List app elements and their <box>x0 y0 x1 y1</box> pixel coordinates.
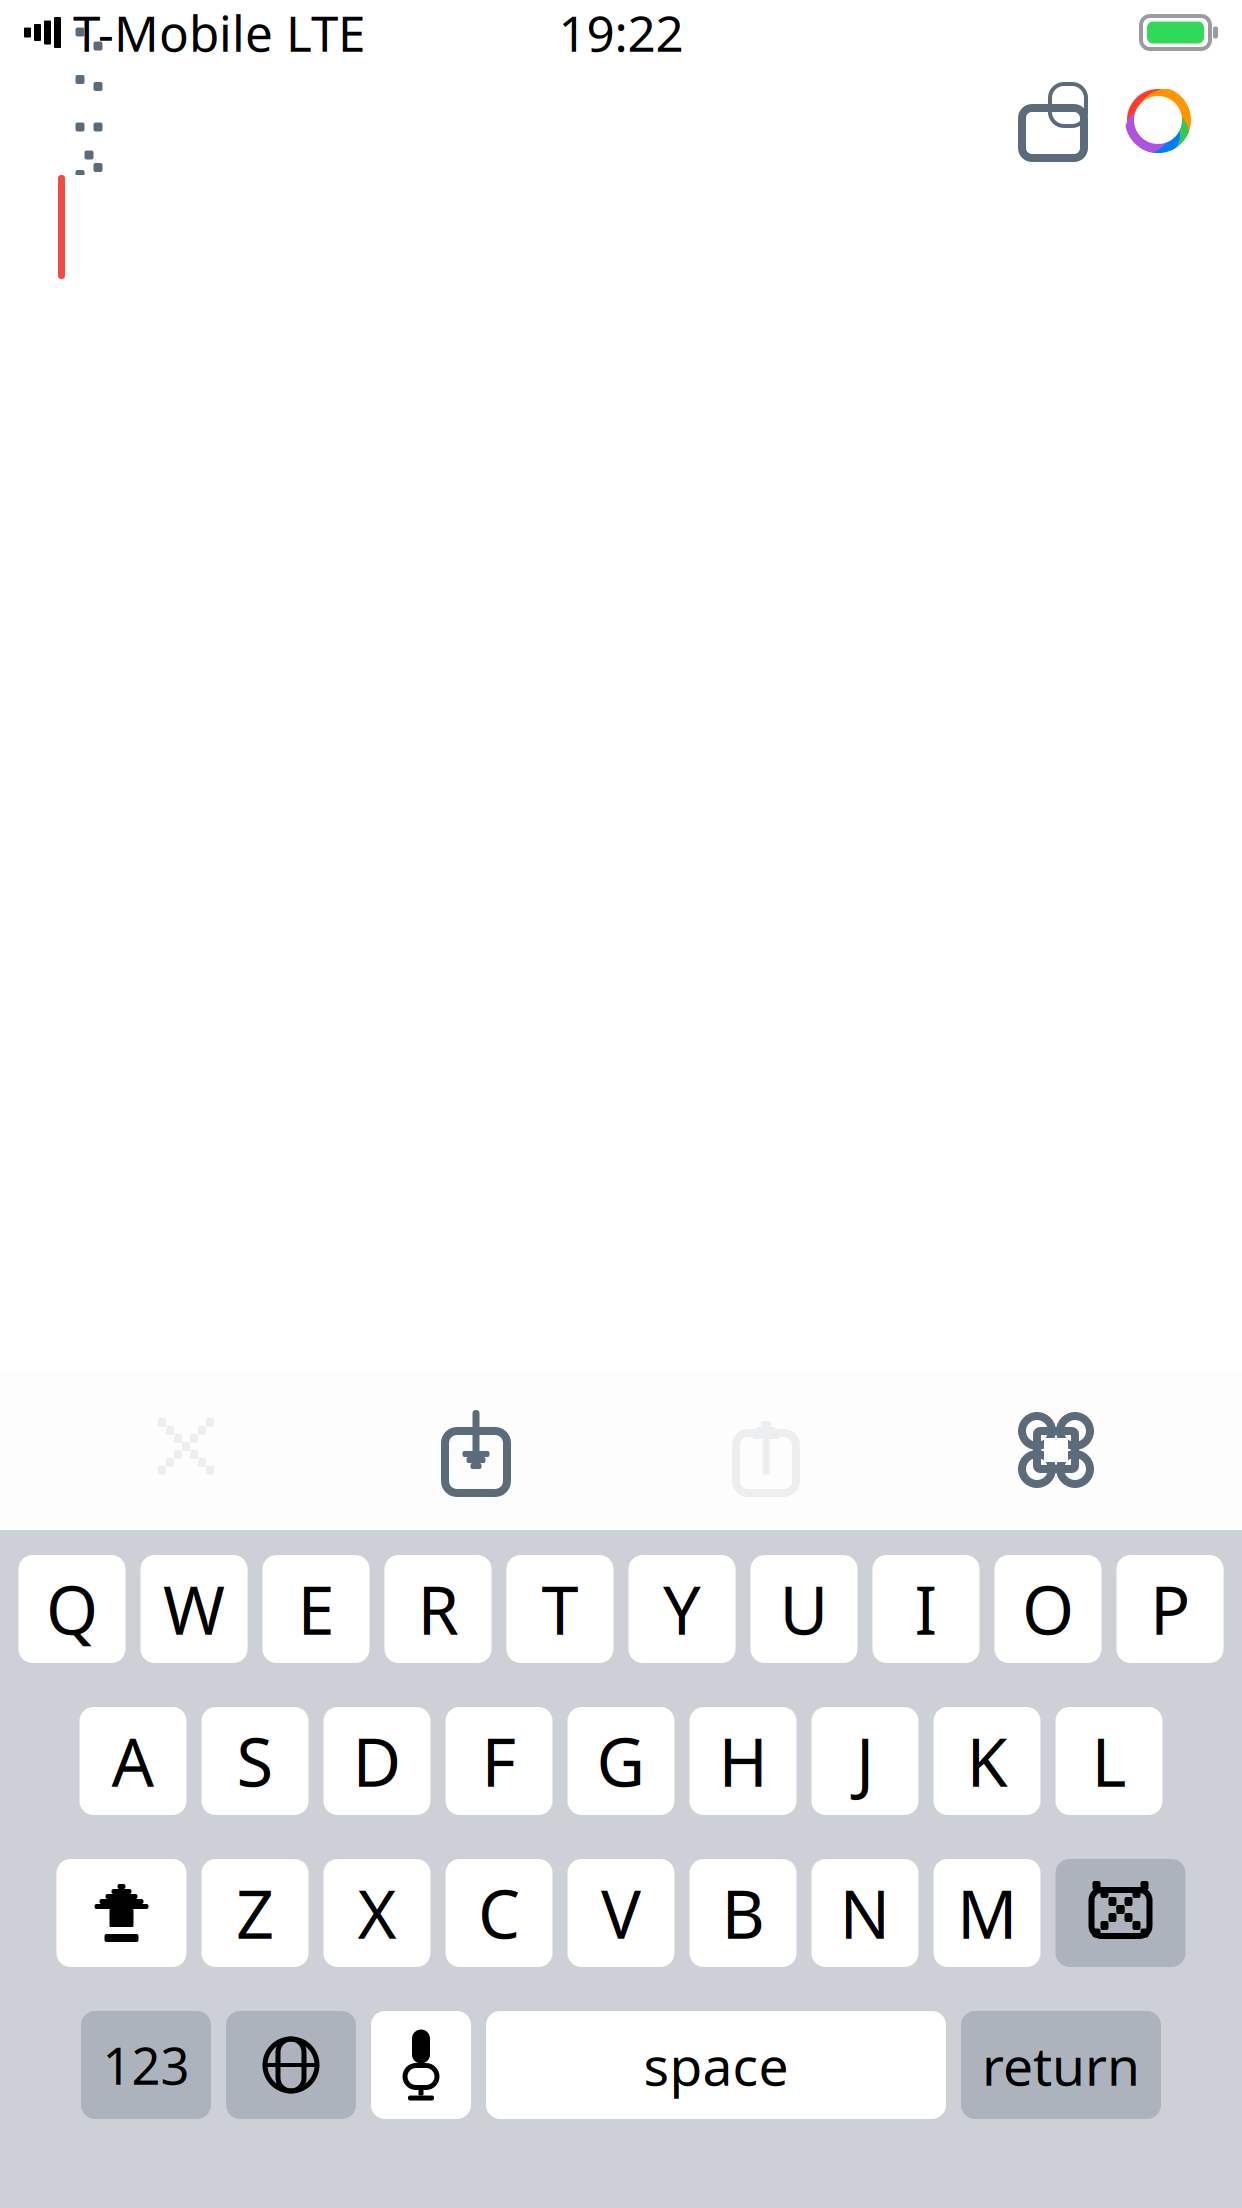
staticText: Y <box>663 1565 701 1653</box>
staticText: C <box>478 1869 520 1957</box>
button[interactable]: T <box>506 1555 613 1663</box>
staticText: E <box>297 1565 334 1653</box>
staticText: W <box>163 1565 225 1653</box>
staticText: 123 <box>102 2031 189 2099</box>
button[interactable]: G <box>567 1707 674 1815</box>
staticText: return <box>982 2030 1140 2100</box>
staticText: T-Mobile LTE <box>73 0 365 65</box>
button[interactable]: Z <box>201 1859 308 1967</box>
staticText: Q <box>46 1565 98 1653</box>
button[interactable]: 123 <box>81 2011 211 2119</box>
button[interactable]: B <box>689 1859 796 1967</box>
staticText: N <box>839 1869 890 1957</box>
button[interactable]: O <box>994 1555 1101 1663</box>
staticText: L <box>1091 1717 1126 1805</box>
button[interactable]: Color <box>1108 72 1208 168</box>
button[interactable]: Next keyboard <box>226 2011 356 2119</box>
staticText: H <box>718 1717 767 1805</box>
button[interactable]: Shortcuts <box>911 1370 1201 1530</box>
staticText: Z <box>236 1869 274 1957</box>
button[interactable]: I <box>872 1555 979 1663</box>
button[interactable]: J <box>811 1707 918 1815</box>
button[interactable]: K <box>933 1707 1040 1815</box>
button[interactable]: R <box>384 1555 491 1663</box>
staticText: J <box>856 1717 874 1805</box>
staticText: S <box>236 1717 273 1805</box>
staticText: G <box>596 1717 645 1805</box>
staticText: R <box>417 1565 458 1653</box>
button[interactable]: E <box>262 1555 369 1663</box>
staticText: K <box>966 1717 1007 1805</box>
button[interactable]: A <box>79 1707 186 1815</box>
button[interactable]: L <box>1055 1707 1162 1815</box>
button[interactable]: C <box>445 1859 552 1967</box>
button[interactable]: F <box>445 1707 552 1815</box>
staticText: F <box>481 1717 516 1805</box>
staticText: P <box>1150 1565 1190 1653</box>
staticText: X <box>357 1869 396 1957</box>
button[interactable]: return <box>961 2011 1161 2119</box>
button[interactable]: D <box>323 1707 430 1815</box>
button[interactable]: Q <box>18 1555 125 1663</box>
button[interactable]: N <box>811 1859 918 1967</box>
button[interactable]: X <box>323 1859 430 1967</box>
button[interactable]: Delete <box>1055 1859 1185 1967</box>
button[interactable]: Dismiss keyboard <box>34 72 144 168</box>
button[interactable]: Y <box>628 1555 735 1663</box>
button[interactable]: P <box>1116 1555 1223 1663</box>
button[interactable]: H <box>689 1707 796 1815</box>
staticText: V <box>601 1869 641 1957</box>
staticText: A <box>111 1717 154 1805</box>
staticText: M <box>957 1869 1017 1957</box>
staticText: 19:22 <box>558 0 683 65</box>
button[interactable]: S <box>201 1707 308 1815</box>
staticText: I <box>914 1565 937 1653</box>
button[interactable]: Share <box>621 1370 911 1530</box>
staticText: O <box>1022 1565 1074 1653</box>
button[interactable]: Shift <box>56 1859 186 1967</box>
staticText: space <box>643 2030 788 2100</box>
button[interactable]: Dictation <box>371 2011 471 2119</box>
button[interactable]: M <box>933 1859 1040 1967</box>
staticText: D <box>352 1717 401 1805</box>
staticText: B <box>721 1869 764 1957</box>
button[interactable]: W <box>140 1555 247 1663</box>
button[interactable]: U <box>750 1555 857 1663</box>
button[interactable]: V <box>567 1859 674 1967</box>
button[interactable]: space <box>486 2011 946 2119</box>
button[interactable]: Save <box>331 1370 621 1530</box>
staticText: U <box>779 1565 828 1653</box>
button[interactable]: Lock <box>998 72 1108 168</box>
staticText: T <box>541 1565 578 1653</box>
